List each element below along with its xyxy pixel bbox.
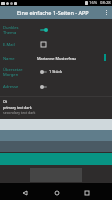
button[interactable]: E-Mail <box>0 38 112 51</box>
staticText: Eine einfache 1-Seiten - APP <box>17 9 89 16</box>
button[interactable]: Home <box>47 183 67 200</box>
button[interactable]: Dunkles Thema <box>0 23 112 36</box>
button[interactable]: Recent apps <box>77 183 97 200</box>
button[interactable]: Name <box>0 52 112 65</box>
button[interactable]: Übersetze Morgen <box>0 65 112 78</box>
staticText: 16% <box>89 0 98 6</box>
staticText: secondary text dark <box>3 110 36 115</box>
staticText: Ot <box>3 99 8 104</box>
button[interactable]: More options <box>101 6 112 19</box>
staticText: primary text dark <box>3 105 32 110</box>
staticText: Übersetze Morgen <box>3 67 33 77</box>
staticText: E-Mail <box>3 42 33 48</box>
staticText: 08:28 <box>100 0 111 6</box>
staticText: Marianne Musterfrau <box>37 56 76 61</box>
button[interactable]: Adresse <box>0 80 112 93</box>
button[interactable]: Back <box>15 183 35 200</box>
staticText: 1 Stück <box>49 69 63 74</box>
staticText: Adresse <box>3 84 33 90</box>
staticText: Dunkles Thema <box>3 25 33 35</box>
staticText: Name <box>3 56 33 62</box>
